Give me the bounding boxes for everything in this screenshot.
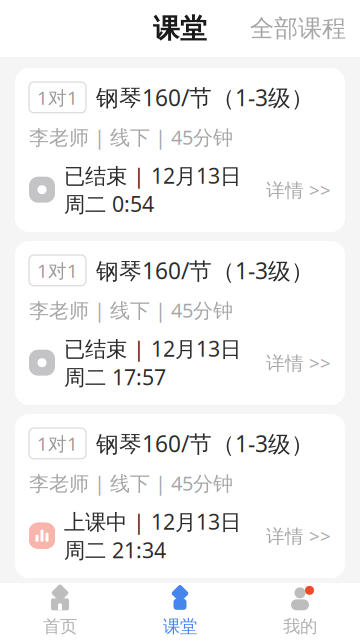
staticText: 1对1 — [37, 85, 78, 110]
staticText: 我的 — [283, 616, 317, 637]
staticText: 李老师 | 线下 | 45分钟 — [29, 297, 233, 323]
staticText: 钢琴160/节（1-3级） — [96, 82, 314, 112]
staticText: 详情 >> — [266, 177, 331, 202]
staticText: 详情 >> — [266, 523, 331, 548]
staticText: 上课中 | 12月13日 周二 21:34 — [64, 507, 241, 564]
staticText: 钢琴160/节（1-3级） — [96, 255, 314, 285]
button[interactable]: 1对1 — [15, 241, 345, 405]
staticText: 全部课程 — [250, 14, 346, 43]
button[interactable]: 首页 — [0, 583, 120, 640]
staticText: 已结束 | 12月13日 周二 17:57 — [64, 334, 241, 391]
button[interactable]: 课堂 — [120, 583, 240, 640]
staticText: 首页 — [43, 616, 77, 637]
staticText: 1对1 — [37, 258, 78, 283]
button[interactable]: 全部课程 — [236, 6, 360, 51]
staticText: 课堂 — [163, 616, 197, 637]
staticText: 1对1 — [37, 431, 78, 456]
button[interactable]: 1对1 — [15, 414, 345, 578]
button[interactable]: 我的 — [240, 583, 360, 640]
staticText: 李老师 | 线下 | 45分钟 — [29, 124, 233, 150]
staticText: 已结束 | 12月13日 周二 0:54 — [64, 161, 241, 218]
staticText: 课堂 — [153, 12, 207, 45]
staticText: 详情 >> — [266, 350, 331, 375]
staticText: 李老师 | 线下 | 45分钟 — [29, 470, 233, 496]
staticText: 钢琴160/节（1-3级） — [96, 428, 314, 458]
button[interactable]: 1对1 — [15, 68, 345, 232]
